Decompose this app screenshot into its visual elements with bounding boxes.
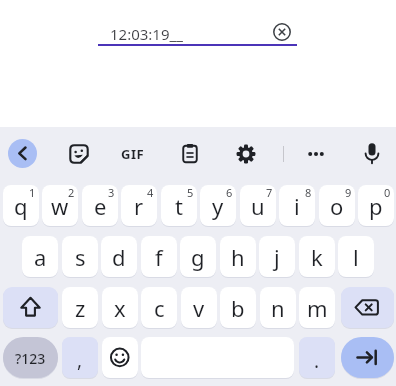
button[interactable]: a bbox=[22, 236, 58, 277]
button[interactable]: c bbox=[141, 287, 177, 328]
staticText: e bbox=[94, 191, 107, 221]
button[interactable] bbox=[59, 134, 99, 174]
button[interactable]: i bbox=[279, 185, 315, 226]
staticText: c bbox=[154, 293, 165, 323]
button[interactable]: o bbox=[319, 185, 355, 226]
button[interactable] bbox=[8, 139, 37, 168]
staticText: n bbox=[271, 293, 285, 323]
button[interactable]: y bbox=[200, 185, 236, 226]
button[interactable]: u bbox=[240, 185, 276, 226]
staticText: 8 bbox=[305, 185, 312, 200]
button[interactable]: x bbox=[102, 287, 138, 328]
staticText: s bbox=[75, 242, 86, 272]
staticText: 7 bbox=[266, 185, 273, 200]
staticText: , bbox=[77, 347, 83, 373]
staticText: d bbox=[112, 242, 126, 272]
staticText: v bbox=[193, 293, 205, 323]
button[interactable]: j bbox=[259, 236, 295, 277]
staticText: b bbox=[231, 293, 245, 323]
staticText: 4 bbox=[147, 185, 154, 200]
staticText: w bbox=[51, 191, 69, 221]
staticText: x bbox=[114, 293, 126, 323]
staticText: k bbox=[311, 242, 323, 272]
button[interactable]: l bbox=[338, 236, 374, 277]
staticText: i bbox=[294, 191, 300, 221]
button[interactable]: r bbox=[121, 185, 157, 226]
button[interactable]: z bbox=[62, 287, 98, 328]
button[interactable]: w bbox=[42, 185, 78, 226]
button[interactable] bbox=[352, 133, 392, 173]
button[interactable] bbox=[341, 337, 394, 378]
staticText: u bbox=[251, 191, 265, 221]
button[interactable]: t bbox=[161, 185, 197, 226]
staticText: . bbox=[314, 348, 320, 374]
staticText: p bbox=[369, 191, 383, 221]
button[interactable] bbox=[226, 134, 266, 174]
staticText: 12:03:19__ bbox=[110, 24, 183, 44]
button[interactable]: s bbox=[62, 236, 98, 277]
button[interactable]: GIF bbox=[113, 134, 153, 174]
staticText: GIF bbox=[121, 145, 145, 163]
staticText: 5 bbox=[187, 185, 194, 200]
staticText: o bbox=[330, 191, 344, 221]
staticText: 1 bbox=[29, 185, 36, 200]
staticText: m bbox=[307, 293, 328, 323]
staticText: j bbox=[274, 242, 280, 272]
staticText: t bbox=[175, 191, 183, 221]
staticText: l bbox=[353, 242, 359, 272]
button[interactable]: , bbox=[62, 337, 98, 378]
staticText: a bbox=[34, 242, 47, 272]
button[interactable]: e bbox=[82, 185, 118, 226]
staticText: 2 bbox=[68, 185, 75, 200]
button[interactable]: v bbox=[181, 287, 217, 328]
button[interactable]: . bbox=[299, 337, 335, 378]
button[interactable] bbox=[170, 134, 210, 174]
staticText: y bbox=[212, 191, 224, 221]
button[interactable]: m bbox=[299, 287, 335, 328]
button[interactable] bbox=[267, 17, 297, 47]
staticText: z bbox=[75, 293, 86, 323]
button[interactable]: d bbox=[101, 236, 137, 277]
staticText: 9 bbox=[345, 185, 352, 200]
staticText: g bbox=[191, 242, 205, 272]
button[interactable]: q bbox=[3, 185, 39, 226]
button[interactable]: n bbox=[260, 287, 296, 328]
button[interactable]: ?123 bbox=[3, 337, 58, 378]
staticText: 0 bbox=[384, 185, 391, 200]
button[interactable] bbox=[341, 287, 394, 328]
button[interactable] bbox=[3, 287, 58, 328]
button[interactable]: g bbox=[180, 236, 216, 277]
staticText: h bbox=[231, 242, 245, 272]
staticText: q bbox=[14, 191, 28, 221]
staticText: r bbox=[134, 191, 144, 221]
button[interactable] bbox=[102, 337, 138, 378]
staticText: 3 bbox=[108, 185, 115, 200]
staticText: ?123 bbox=[15, 349, 46, 368]
button[interactable]: h bbox=[220, 236, 256, 277]
staticText: 6 bbox=[226, 185, 233, 200]
button[interactable]: b bbox=[220, 287, 256, 328]
staticText: f bbox=[155, 242, 163, 272]
button[interactable]: k bbox=[299, 236, 335, 277]
button[interactable]: f bbox=[141, 236, 177, 277]
button[interactable] bbox=[296, 134, 336, 174]
button[interactable]: p bbox=[358, 185, 394, 226]
